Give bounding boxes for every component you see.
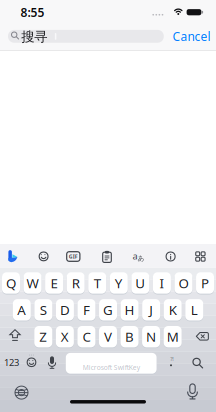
- button[interactable]: W: [24, 272, 42, 294]
- staticText: F: [83, 301, 90, 319]
- button[interactable]: Y: [110, 272, 128, 294]
- button[interactable]: K: [164, 299, 182, 321]
- staticText: O: [178, 274, 188, 292]
- button[interactable]: U: [131, 272, 149, 294]
- staticText: I: [159, 274, 164, 292]
- staticText: E: [51, 274, 58, 292]
- button[interactable]: H: [121, 299, 139, 321]
- button[interactable]: O: [174, 272, 192, 294]
- staticText: P: [201, 274, 209, 292]
- button[interactable]: [8, 250, 20, 263]
- staticText: Q: [6, 274, 16, 292]
- button[interactable]: ?!: [165, 356, 177, 370]
- button[interactable]: [8, 329, 22, 342]
- staticText: Y: [115, 274, 123, 292]
- button[interactable]: GIF: [67, 252, 80, 261]
- button[interactable]: C: [77, 325, 95, 348]
- button[interactable]: R: [67, 272, 85, 294]
- staticText: Cancel: [172, 28, 210, 44]
- button[interactable]: I: [153, 272, 171, 294]
- staticText: M: [167, 328, 179, 345]
- staticText: T: [94, 274, 101, 292]
- staticText: Microsoft SwiftKey: [83, 363, 140, 372]
- staticText: B: [125, 328, 134, 345]
- button[interactable]: [14, 386, 28, 400]
- staticText: a: [132, 250, 137, 262]
- button[interactable]: [192, 357, 204, 369]
- staticText: Z: [39, 328, 47, 345]
- button[interactable]: Microsoft SwiftKey: [66, 352, 157, 374]
- button[interactable]: X: [56, 325, 74, 348]
- staticText: R: [72, 274, 80, 292]
- staticText: D: [60, 301, 70, 319]
- button[interactable]: [48, 356, 56, 369]
- button[interactable]: [26, 357, 37, 368]
- staticText: W: [27, 274, 39, 292]
- button[interactable]: [38, 251, 49, 262]
- button[interactable]: E: [45, 272, 63, 294]
- button[interactable]: B: [120, 325, 138, 348]
- staticText: S: [40, 301, 47, 319]
- button[interactable]: G: [99, 299, 117, 321]
- staticText: J: [149, 301, 153, 319]
- staticText: H: [125, 301, 135, 319]
- button[interactable]: S: [34, 299, 52, 321]
- staticText: K: [169, 301, 177, 319]
- staticText: ?!: [170, 355, 173, 363]
- staticText: あ: [137, 254, 144, 262]
- button[interactable]: A: [13, 299, 31, 321]
- button[interactable]: [196, 332, 209, 341]
- staticText: G: [103, 301, 113, 319]
- button[interactable]: M: [164, 325, 182, 348]
- staticText: 8:55: [21, 4, 45, 20]
- button[interactable]: Z: [34, 325, 52, 348]
- button[interactable]: L: [185, 299, 203, 321]
- button[interactable]: D: [56, 299, 74, 321]
- button[interactable]: F: [77, 299, 95, 321]
- button[interactable]: N: [142, 325, 160, 348]
- button[interactable]: [102, 251, 112, 263]
- button[interactable]: [165, 251, 176, 262]
- button[interactable]: 搜寻: [8, 30, 164, 43]
- staticText: 搜寻: [21, 29, 47, 45]
- staticText: V: [104, 328, 112, 345]
- button[interactable]: Q: [2, 272, 20, 294]
- staticText: U: [135, 274, 145, 292]
- staticText: C: [82, 328, 90, 345]
- staticText: L: [191, 301, 198, 319]
- button[interactable]: T: [88, 272, 106, 294]
- button[interactable]: [195, 251, 206, 262]
- staticText: X: [61, 328, 69, 345]
- button[interactable]: J: [142, 299, 160, 321]
- staticText: N: [146, 328, 156, 345]
- button[interactable]: P: [196, 272, 214, 294]
- staticText: 123: [4, 356, 19, 368]
- staticText: GIF: [69, 253, 78, 260]
- button[interactable]: a: [131, 251, 144, 262]
- staticText: A: [17, 301, 26, 319]
- button[interactable]: 123: [4, 356, 19, 368]
- button[interactable]: [187, 384, 198, 400]
- button[interactable]: V: [99, 325, 117, 348]
- button[interactable]: Cancel: [172, 28, 210, 44]
